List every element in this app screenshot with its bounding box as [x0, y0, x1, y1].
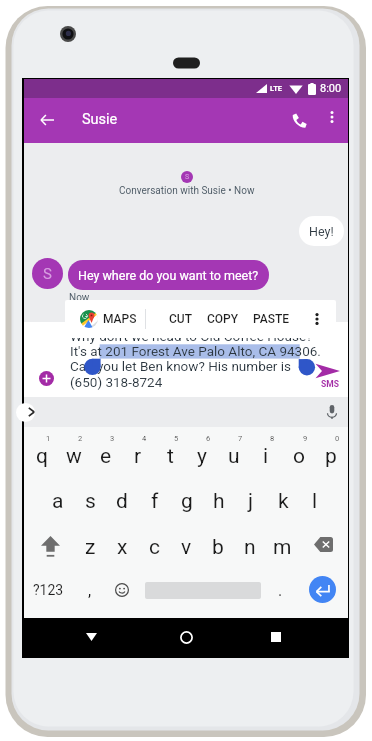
staticText: Why don't we head to Old Coffee House?	[70, 328, 313, 344]
staticText: 8:00	[320, 82, 342, 95]
staticText: Hey where do you want to meet?	[78, 268, 259, 283]
button[interactable]: Voice input	[322, 402, 342, 422]
staticText: LTE	[270, 84, 283, 93]
button[interactable]: MAPS	[65, 300, 145, 338]
button[interactable]: j	[235, 484, 267, 518]
button[interactable]: i	[250, 439, 282, 473]
staticText: S	[43, 265, 52, 283]
button[interactable]: Recents	[261, 618, 291, 656]
button[interactable]: Add attachment	[39, 371, 54, 386]
button[interactable]: Call	[279, 100, 319, 140]
button[interactable]: ,	[76, 573, 104, 607]
staticText: x	[117, 535, 128, 560]
staticText: 4	[142, 434, 147, 443]
button[interactable]: .	[266, 573, 294, 607]
button[interactable]: k	[267, 484, 299, 518]
button[interactable]: Home	[171, 618, 201, 656]
button[interactable]: Emoji	[108, 573, 136, 607]
staticText: It's at 201 Forest Ave Palo Alto, CA 943…	[70, 343, 321, 359]
button[interactable]: Send SMS	[312, 361, 348, 393]
staticText: 5	[174, 434, 179, 443]
button[interactable]: q	[26, 439, 58, 473]
button[interactable]: e	[90, 439, 122, 473]
button[interactable]: COPY	[201, 300, 245, 338]
button[interactable]: w	[58, 439, 90, 473]
button[interactable]: z	[74, 530, 106, 564]
staticText: r	[134, 444, 142, 469]
button[interactable]: More	[303, 300, 331, 338]
button[interactable]: u	[218, 439, 250, 473]
button[interactable]: Back	[76, 618, 106, 656]
staticText: Now	[69, 292, 90, 304]
staticText: y	[197, 444, 207, 469]
staticText: .	[278, 581, 283, 600]
staticText: ?123	[33, 582, 64, 598]
staticText: d	[116, 489, 128, 514]
button[interactable]: Back	[27, 100, 67, 140]
staticText: b	[212, 535, 224, 560]
staticText: Conversation with Susie • Now	[119, 185, 255, 197]
staticText: Can you let Ben know? His number is	[70, 358, 292, 374]
staticText: Hey!	[309, 224, 334, 239]
button[interactable]: Enter	[309, 576, 336, 603]
button[interactable]: a	[42, 484, 74, 518]
button[interactable]: d	[106, 484, 138, 518]
staticText: e	[100, 444, 112, 469]
button[interactable]: m	[266, 530, 298, 564]
staticText: j	[248, 489, 254, 514]
button[interactable]: p	[315, 439, 347, 473]
staticText: PASTE	[253, 312, 290, 326]
staticText: l	[312, 489, 318, 514]
staticText: n	[244, 535, 256, 560]
button[interactable]: Hey where do you want to meet?	[68, 260, 269, 290]
button[interactable]: g	[171, 484, 203, 518]
button[interactable]: y	[186, 439, 218, 473]
button[interactable]: PASTE	[247, 300, 296, 338]
button[interactable]: o	[283, 439, 315, 473]
staticText: 3	[110, 434, 115, 443]
staticText: g	[181, 489, 193, 514]
staticText: u	[228, 444, 240, 469]
button[interactable]: x	[106, 530, 138, 564]
button[interactable]: b	[202, 530, 234, 564]
button[interactable]: r	[122, 439, 154, 473]
staticText: MAPS	[103, 312, 137, 326]
staticText: t	[167, 444, 174, 469]
button[interactable]: ?123	[24, 573, 72, 607]
staticText: Susie	[82, 111, 118, 128]
staticText: 2	[78, 434, 83, 443]
button[interactable]: l	[299, 484, 331, 518]
staticText: 8	[270, 434, 275, 443]
button[interactable]: Expand	[16, 403, 35, 422]
button[interactable]: s	[74, 484, 106, 518]
button[interactable]: Backspace	[303, 527, 343, 561]
button[interactable]: f	[139, 484, 171, 518]
button[interactable]: n	[234, 530, 266, 564]
staticText: 6	[206, 434, 211, 443]
staticText: S	[185, 173, 190, 181]
staticText: k	[278, 489, 289, 514]
staticText: 7	[238, 434, 243, 443]
staticText: ,	[88, 581, 92, 600]
staticText: a	[52, 489, 64, 514]
staticText: 1	[46, 434, 51, 443]
button[interactable]: h	[203, 484, 235, 518]
staticText: m	[273, 535, 292, 560]
staticText: (650) 318-8724	[70, 374, 163, 390]
staticText: o	[293, 444, 305, 469]
button[interactable]: CUT	[158, 300, 202, 338]
button[interactable]: Hey!	[299, 216, 344, 246]
staticText: i	[263, 444, 269, 469]
button[interactable]: More options	[315, 100, 349, 134]
staticText: h	[213, 489, 225, 514]
button[interactable]: Shift	[30, 527, 70, 565]
staticText: COPY	[207, 312, 239, 326]
button[interactable]: v	[170, 530, 202, 564]
button[interactable]: t	[154, 439, 186, 473]
staticText: CUT	[169, 312, 192, 326]
button[interactable]: c	[138, 530, 170, 564]
staticText: c	[149, 535, 160, 560]
staticText: s	[85, 489, 96, 514]
staticText: 0	[335, 434, 340, 443]
button[interactable]	[140, 573, 265, 607]
